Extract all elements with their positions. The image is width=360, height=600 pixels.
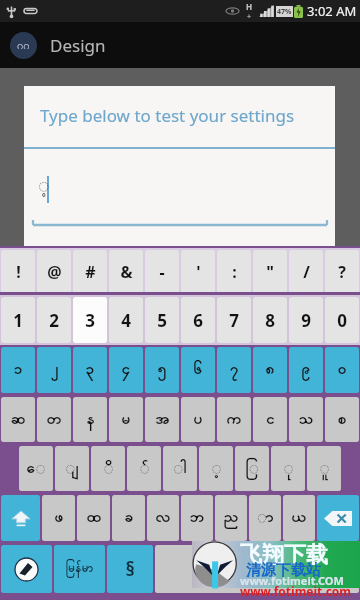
staticText: ၂ <box>50 358 59 382</box>
button[interactable]: ဘ <box>181 495 213 541</box>
button[interactable]: လ <box>147 495 179 541</box>
button[interactable]: ထ <box>77 495 110 541</box>
button[interactable]: Shift <box>1 495 40 541</box>
staticText: ? <box>338 261 346 283</box>
button[interactable]: " <box>253 250 287 293</box>
button[interactable]: ! <box>1 250 35 293</box>
staticText: ဖ <box>54 506 64 530</box>
button[interactable]: # <box>73 250 107 293</box>
staticText: ိ <box>103 457 114 481</box>
button[interactable]: ု <box>271 446 305 491</box>
button[interactable]: ၁ <box>1 347 35 393</box>
button[interactable]: ? <box>325 250 359 293</box>
button[interactable]: ၄ <box>109 347 143 393</box>
staticText: န <box>86 408 95 432</box>
button[interactable]: စ <box>325 397 359 442</box>
button[interactable]: ျ <box>55 446 89 491</box>
staticText: ု <box>283 457 294 481</box>
button[interactable]: ၂ <box>37 347 71 393</box>
button[interactable]: န <box>73 397 107 442</box>
button[interactable]: 5 <box>145 297 179 343</box>
button[interactable]: 7 <box>217 297 251 343</box>
button[interactable]: 0 <box>325 297 359 343</box>
button[interactable]: ' <box>181 250 215 293</box>
button[interactable]: 8 <box>253 297 287 343</box>
button[interactable]: ် <box>127 446 161 491</box>
staticText: 9 <box>301 309 311 332</box>
button[interactable]: သ <box>289 397 323 442</box>
button[interactable]: ၀ <box>325 347 359 393</box>
staticText: တ <box>46 408 62 432</box>
staticText: ၉ <box>301 358 311 382</box>
button[interactable]: Myanmar <box>155 545 359 593</box>
staticText: 清源下载站 <box>246 561 321 580</box>
button[interactable]: 9 <box>289 297 323 343</box>
staticText: ၃ <box>85 358 95 382</box>
button[interactable]: ေ <box>19 446 53 491</box>
button[interactable]: ၇ <box>217 347 251 393</box>
button[interactable]: ့ <box>199 446 233 491</box>
staticText: ၅ <box>157 358 167 382</box>
button[interactable]: ည <box>215 495 247 541</box>
button[interactable]: 1 <box>1 297 35 343</box>
button[interactable]: ြ <box>235 446 269 491</box>
button[interactable]: ူ <box>307 446 341 491</box>
button[interactable]: ာ <box>249 495 281 541</box>
staticText: ၇ <box>229 358 239 382</box>
button[interactable]: မြန်မာ <box>54 545 105 593</box>
button[interactable]: ဖ <box>42 495 75 541</box>
button[interactable]: ၉ <box>289 347 323 393</box>
staticText: # <box>85 261 96 283</box>
button[interactable]: တ <box>37 397 71 442</box>
button[interactable]: ိ <box>91 446 125 491</box>
staticText: မြန်မာ <box>65 560 94 578</box>
button[interactable]: မ <box>109 397 143 442</box>
button[interactable]: / <box>289 250 323 293</box>
button[interactable]: & <box>109 250 143 293</box>
staticText: ! <box>16 261 21 283</box>
button[interactable]: ၆ <box>181 347 215 393</box>
button[interactable]: 2 <box>37 297 71 343</box>
button[interactable]: ဆ <box>1 397 35 442</box>
button[interactable]: အ <box>145 397 179 442</box>
button[interactable]: ၅ <box>145 347 179 393</box>
staticText: 6 <box>193 309 203 332</box>
staticText: + <box>247 12 252 22</box>
staticText: § <box>125 556 135 582</box>
staticText: က <box>226 408 242 432</box>
button[interactable]: ဂဂ <box>0 22 360 68</box>
staticText: ြ <box>245 457 259 481</box>
button[interactable]: ယ <box>283 495 315 541</box>
staticText: Type below to test your settings <box>40 104 295 127</box>
staticText: လ <box>155 506 171 530</box>
staticText: ' <box>196 261 201 283</box>
staticText: ထ <box>86 506 102 530</box>
button[interactable]: @ <box>37 250 71 293</box>
button[interactable]: 6 <box>181 297 215 343</box>
staticText: 8 <box>265 309 275 332</box>
staticText: www.fotimeit.COM <box>240 573 344 588</box>
staticText: 47% <box>277 7 292 17</box>
button[interactable]: Change input method <box>1 545 52 593</box>
staticText: ၈ <box>265 358 275 382</box>
button[interactable]: ါ <box>163 446 197 491</box>
button[interactable]: ၈ <box>253 347 287 393</box>
button[interactable]: 3 <box>73 297 107 343</box>
staticText: 3:02 AM <box>307 2 357 20</box>
button[interactable]: : <box>217 250 251 293</box>
staticText: 3 <box>85 309 95 332</box>
staticText: & <box>120 261 133 283</box>
staticText: ့ <box>211 457 222 481</box>
staticText: ၁ <box>13 358 23 382</box>
button[interactable]: င <box>253 397 287 442</box>
button[interactable]: 4 <box>109 297 143 343</box>
staticText: 飞翔下载 <box>240 541 328 569</box>
button[interactable]: က <box>217 397 251 442</box>
button[interactable]: Backspace <box>317 495 359 541</box>
button[interactable]: ၃ <box>73 347 107 393</box>
button[interactable]: ပ <box>181 397 215 442</box>
button[interactable]: - <box>145 250 179 293</box>
button[interactable]: § <box>107 545 153 593</box>
staticText: " <box>266 261 274 283</box>
button[interactable]: ခ <box>112 495 145 541</box>
